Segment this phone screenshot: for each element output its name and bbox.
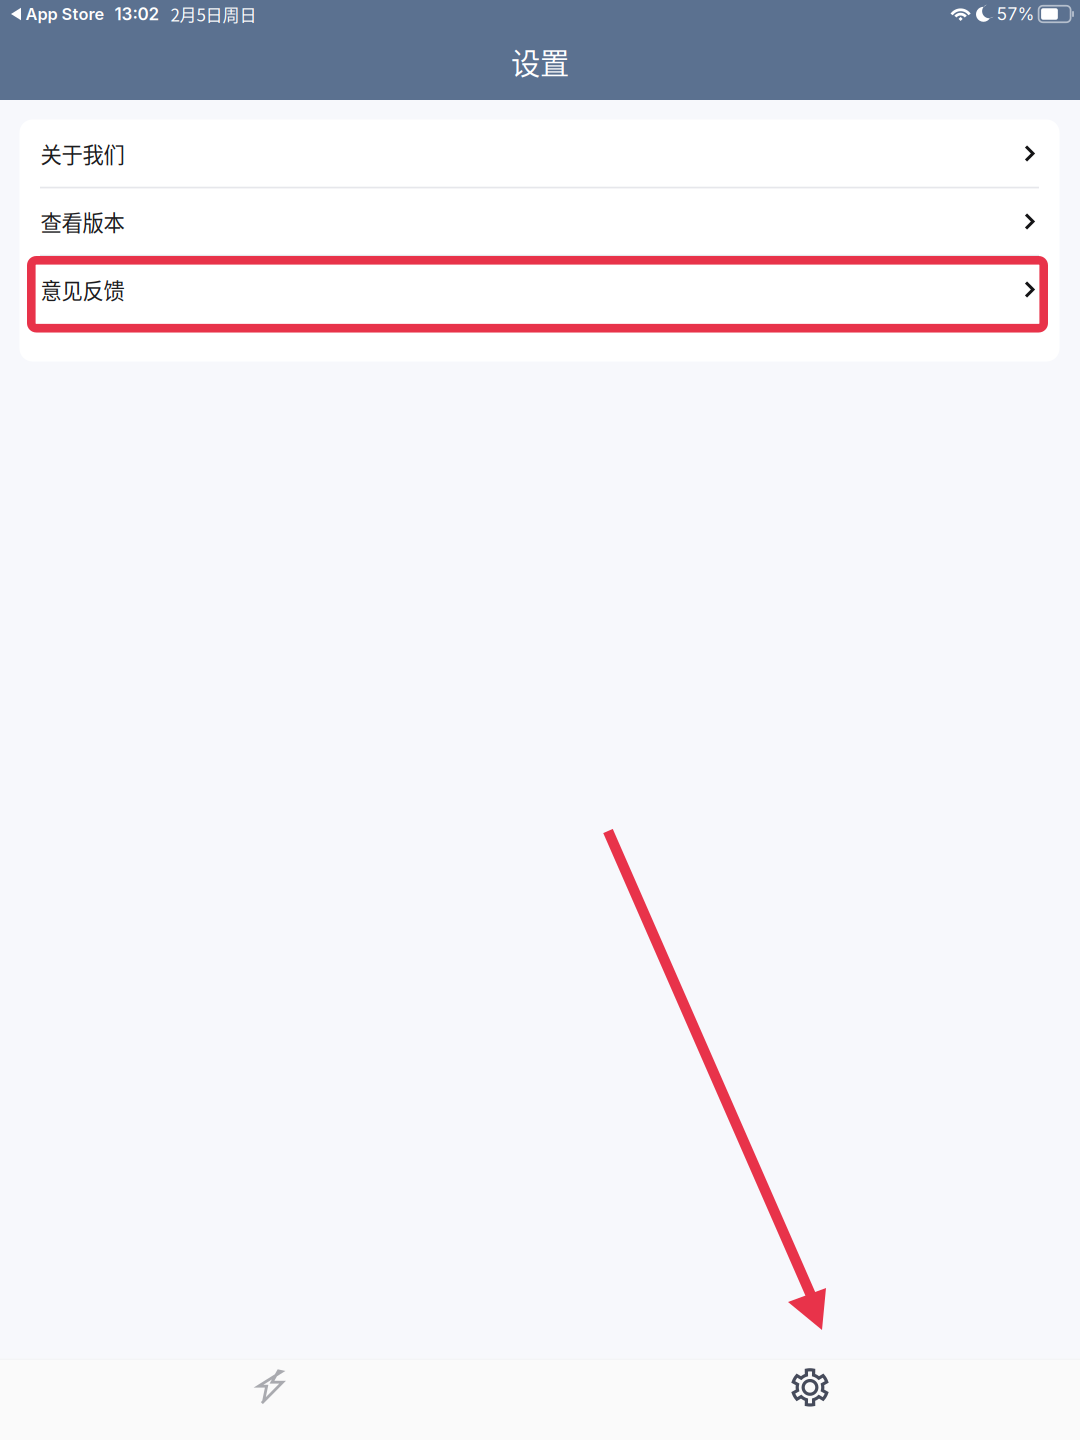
button[interactable]: 意见反馈	[19, 255, 1059, 323]
button[interactable]: 查看版本	[19, 187, 1059, 255]
button[interactable]: 设置	[540, 1360, 1080, 1440]
staticText: 57%	[997, 3, 1035, 24]
staticText: 2月5日周日	[170, 2, 256, 26]
button[interactable]: 快捷	[0, 1360, 540, 1440]
staticText: 13:02	[114, 4, 159, 24]
staticText: App Store	[25, 4, 104, 24]
staticText: 关于我们	[40, 138, 124, 169]
button[interactable]: 关于我们	[19, 119, 1059, 187]
staticText: 查看版本	[40, 206, 124, 237]
staticText: 设置	[511, 40, 569, 83]
staticText: 意见反馈	[40, 274, 124, 305]
